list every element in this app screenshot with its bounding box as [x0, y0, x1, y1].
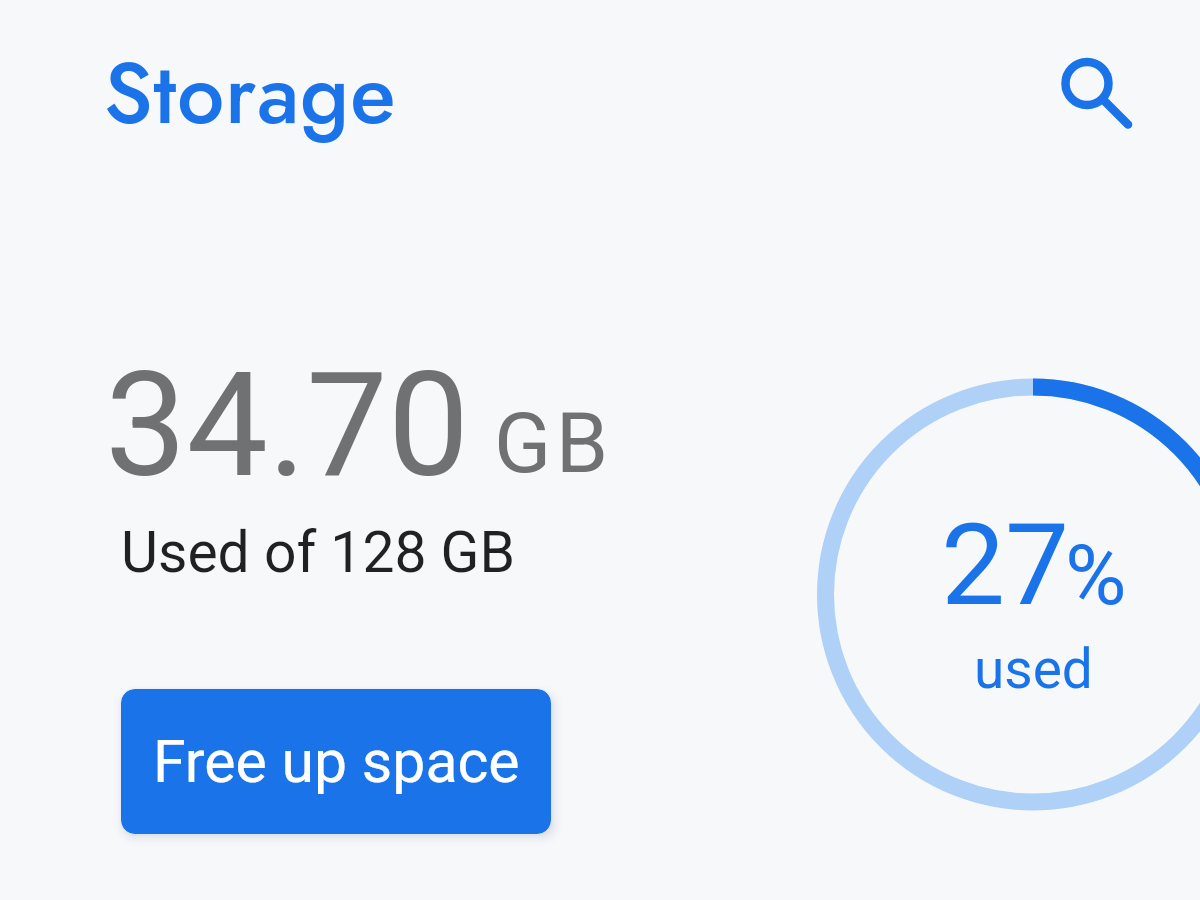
staticText: Storage: [104, 33, 397, 154]
staticText: Free up space: [153, 727, 520, 796]
staticText: 34.70: [105, 340, 470, 510]
staticText: used: [974, 637, 1093, 701]
staticText: 27: [941, 498, 1070, 632]
button[interactable]: Free up space: [121, 689, 551, 834]
staticText: Used of 128 GB: [121, 519, 515, 586]
button[interactable]: Search: [1047, 44, 1127, 124]
staticText: %: [1065, 526, 1127, 624]
staticText: GB: [494, 394, 613, 492]
